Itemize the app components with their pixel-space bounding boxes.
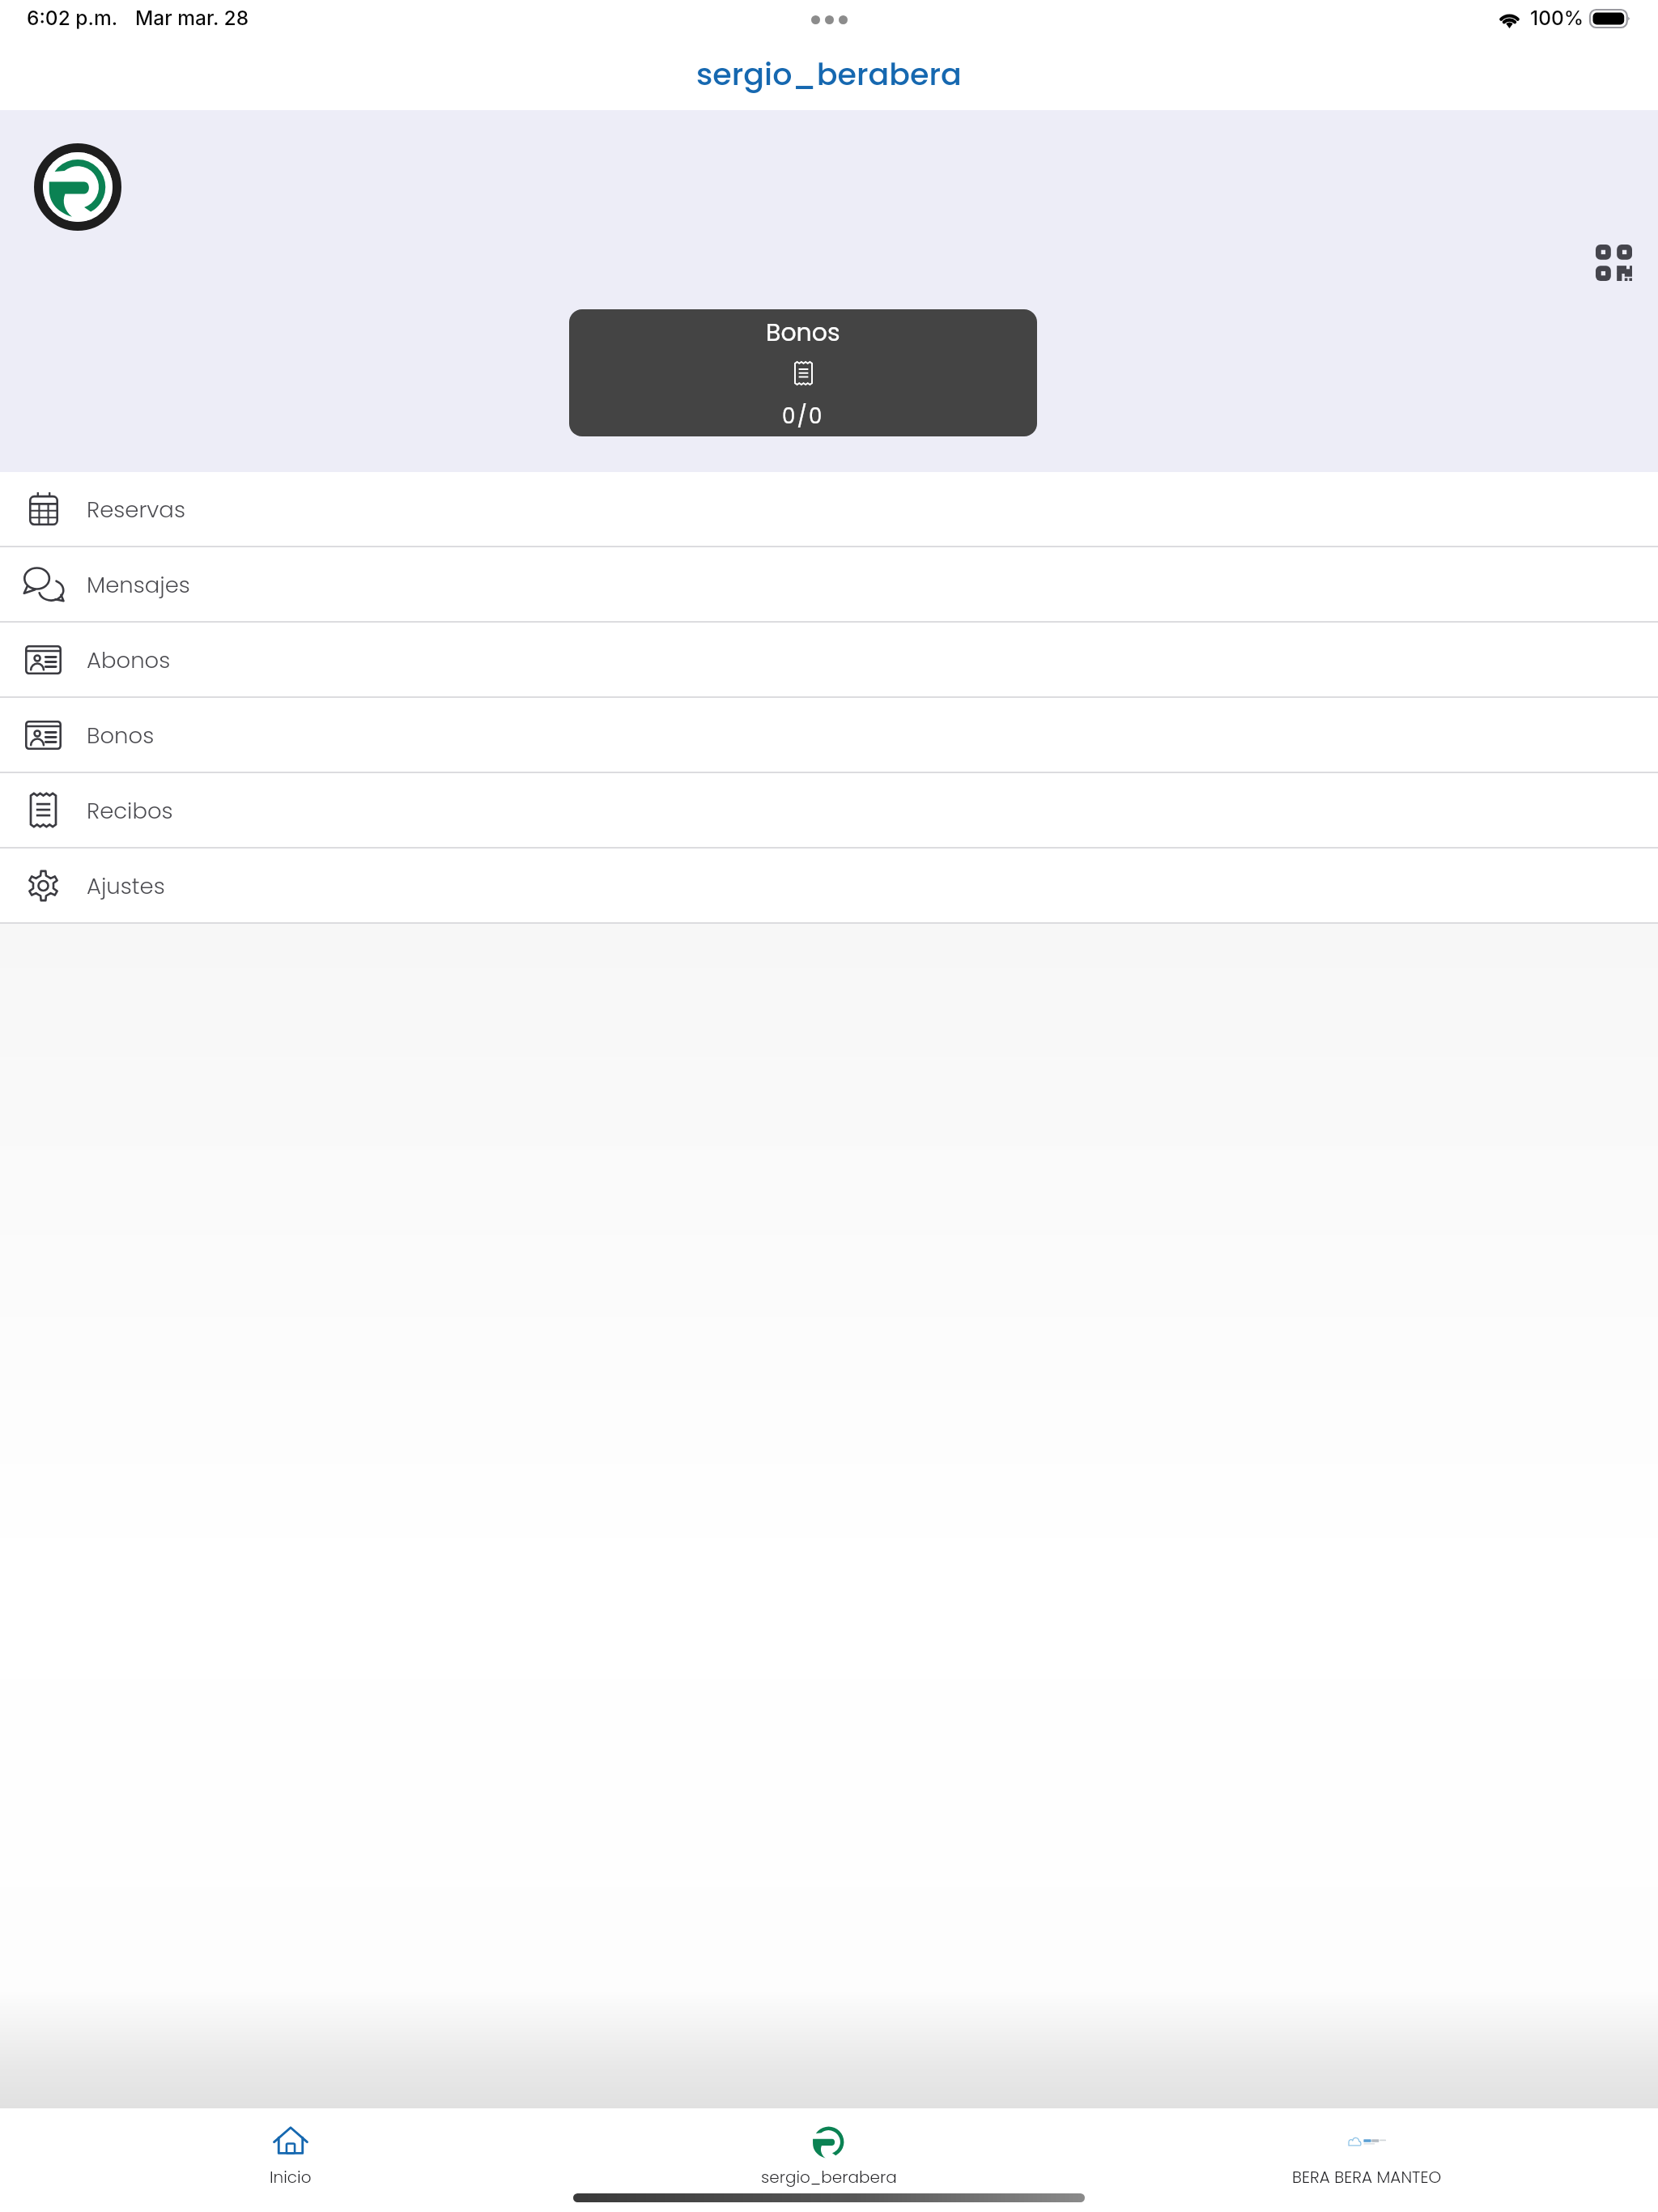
button[interactable]: sergio_berabera xyxy=(559,2108,1098,2212)
staticText: 100% xyxy=(1530,6,1584,30)
staticText: Bonos xyxy=(766,316,840,350)
staticText: 6:02 p.m. xyxy=(27,6,118,30)
staticText: Ajustes xyxy=(87,870,165,901)
staticText: sergio_berabera xyxy=(761,2166,897,2189)
button[interactable]: Inicio xyxy=(22,2108,559,2212)
staticText: BERA BERA MANTEO xyxy=(1292,2166,1442,2189)
button[interactable]: Bonos xyxy=(569,309,1037,436)
button[interactable]: Ajustes xyxy=(0,849,1658,922)
staticText: Mar mar. 28 xyxy=(135,6,249,30)
other: Logo club xyxy=(34,143,121,231)
staticText: Recibos xyxy=(87,795,173,826)
button[interactable]: BERA BERA MANTEO xyxy=(1098,2108,1636,2212)
staticText: Bonos xyxy=(87,720,155,751)
button[interactable]: Código QR xyxy=(1596,245,1632,281)
staticText: Inicio xyxy=(270,2166,312,2189)
staticText: Reservas xyxy=(87,494,185,525)
staticText: Abonos xyxy=(87,644,171,675)
staticText: Mensajes xyxy=(87,569,190,600)
staticText: 0/0 xyxy=(782,402,824,431)
button[interactable]: Mensajes xyxy=(0,547,1658,621)
button[interactable]: Abonos xyxy=(0,623,1658,696)
button[interactable]: Recibos xyxy=(0,773,1658,847)
button[interactable]: Bonos xyxy=(0,698,1658,772)
staticText: sergio_berabera xyxy=(696,53,962,96)
button[interactable]: Reservas xyxy=(0,472,1658,546)
